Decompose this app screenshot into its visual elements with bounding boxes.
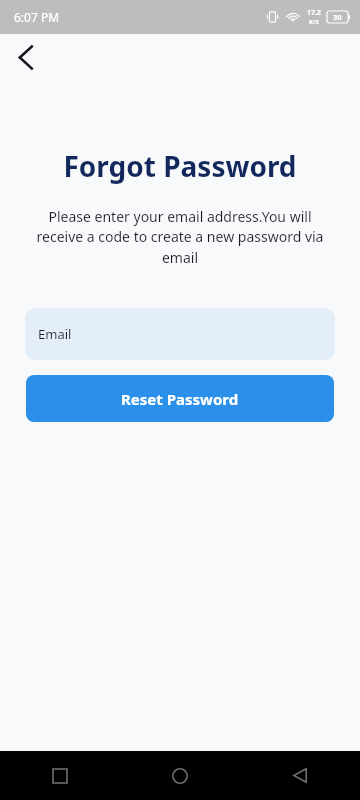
staticText: Forgot Password <box>0 147 360 185</box>
staticText: 30 <box>333 12 342 22</box>
staticText: Please enter your email address.You will… <box>32 207 328 268</box>
button[interactable]: Home <box>120 751 240 800</box>
button[interactable]: Email <box>25 308 335 360</box>
staticText: 17.2 <box>307 8 321 18</box>
staticText: Reset Password <box>121 389 239 409</box>
button[interactable]: Back <box>10 42 40 72</box>
staticText: Email <box>38 325 72 343</box>
button[interactable]: Back <box>240 751 360 800</box>
button[interactable]: Reset Password <box>26 375 334 422</box>
button[interactable]: Recent apps <box>0 751 120 800</box>
staticText: 6:07 PM <box>14 9 60 25</box>
staticText: K/S <box>309 18 319 26</box>
